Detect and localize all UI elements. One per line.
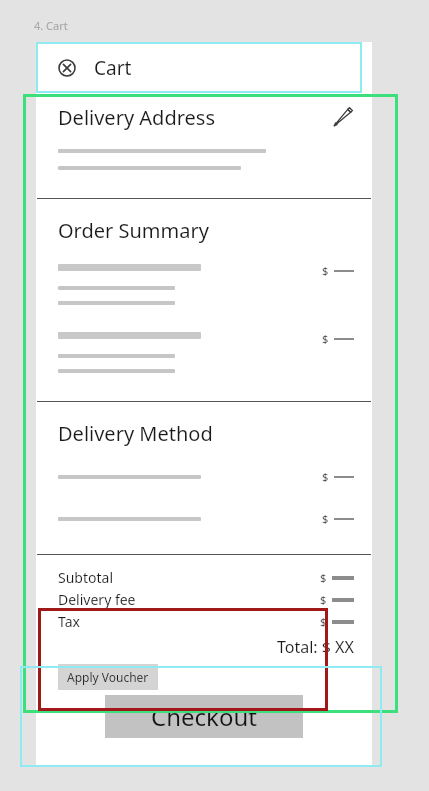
staticText: $	[322, 511, 329, 526]
staticText: Apply Voucher	[67, 669, 149, 685]
button[interactable]: Close	[58, 59, 76, 77]
staticText: Checkout	[151, 700, 257, 733]
staticText: Tax	[58, 612, 80, 631]
staticText: $	[322, 331, 329, 346]
button[interactable]: $	[58, 511, 354, 526]
staticText: $	[320, 614, 327, 629]
button[interactable]: $	[58, 469, 354, 484]
button[interactable]: Edit delivery address	[330, 106, 354, 130]
button[interactable]: Checkout	[105, 695, 303, 738]
button[interactable]: Apply Voucher	[58, 664, 158, 690]
staticText: $	[320, 592, 327, 607]
staticText: $	[322, 263, 329, 278]
staticText: Delivery Address	[58, 104, 215, 131]
button[interactable]: $	[58, 332, 354, 373]
staticText: $	[320, 570, 327, 585]
staticText: Delivery Method	[58, 420, 213, 447]
staticText: 4. Cart	[34, 18, 68, 33]
staticText: $	[322, 469, 329, 484]
staticText: Total: $ XX	[277, 636, 354, 658]
staticText: Cart	[94, 55, 132, 81]
staticText: Delivery fee	[58, 590, 136, 609]
button[interactable]: Delivery Address	[58, 104, 354, 131]
staticText: Subtotal	[58, 568, 113, 587]
button[interactable]: $	[58, 264, 354, 305]
button[interactable]: Close	[36, 42, 372, 94]
staticText: Order Summary	[58, 217, 209, 244]
